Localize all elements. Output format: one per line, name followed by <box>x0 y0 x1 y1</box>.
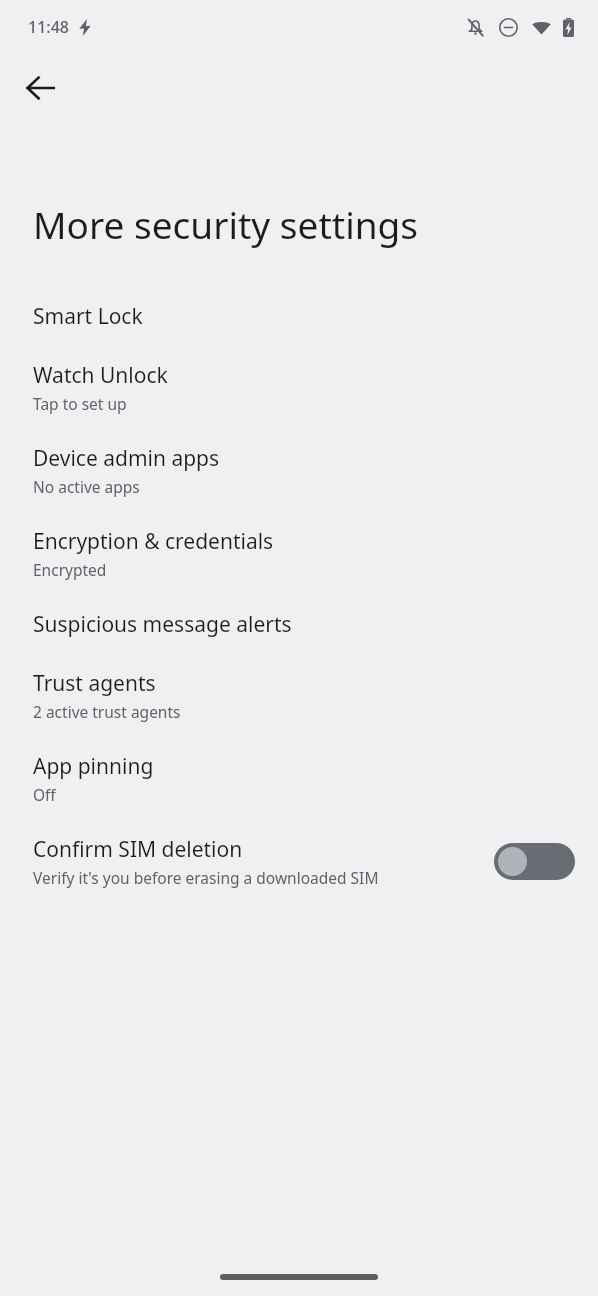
button[interactable]: App pinning <box>0 737 598 820</box>
staticText: More security settings <box>33 199 419 249</box>
staticText: Device admin apps <box>33 444 220 473</box>
staticText: Encryption & credentials <box>33 527 274 556</box>
button[interactable]: Confirm SIM deletion <box>494 843 575 880</box>
staticText: Trust agents <box>33 669 156 698</box>
button[interactable]: Trust agents <box>0 654 598 737</box>
button[interactable]: Confirm SIM deletion <box>0 820 598 903</box>
button[interactable]: Device admin apps <box>0 429 598 512</box>
button[interactable]: Watch Unlock <box>0 346 598 429</box>
staticText: App pinning <box>33 752 154 781</box>
button[interactable]: Smart Lock <box>0 287 598 346</box>
button[interactable]: Suspicious message alerts <box>0 595 598 654</box>
staticText: Suspicious message alerts <box>33 610 292 639</box>
staticText: 2 active trust agents <box>33 701 181 722</box>
staticText: Watch Unlock <box>33 361 168 390</box>
staticText: Confirm SIM deletion <box>33 835 243 864</box>
staticText: Encrypted <box>33 559 107 580</box>
staticText: Off <box>33 784 56 805</box>
button[interactable]: Encryption & credentials <box>0 512 598 595</box>
staticText: 11:48 <box>28 16 69 38</box>
staticText: Smart Lock <box>33 302 143 331</box>
staticText: Tap to set up <box>33 393 127 414</box>
button[interactable]: Back <box>17 65 63 111</box>
staticText: Verify it's you before erasing a downloa… <box>33 867 379 888</box>
staticText: No active apps <box>33 476 140 497</box>
